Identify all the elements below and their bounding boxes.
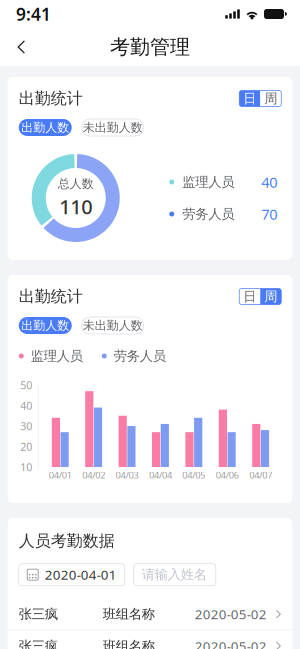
staticText: 劳务人员 bbox=[114, 348, 166, 364]
staticText: 人员考勤数据 bbox=[19, 531, 115, 551]
staticText: 劳务人员 bbox=[182, 206, 234, 222]
staticText: 04/05 bbox=[182, 469, 205, 481]
staticText: 04/02 bbox=[82, 469, 105, 481]
button[interactable]: 未出勤人数 bbox=[82, 119, 144, 136]
button[interactable]: 未出勤人数 bbox=[82, 317, 144, 334]
staticText: 班组名称 bbox=[103, 638, 155, 649]
button[interactable]: 张三疯 bbox=[8, 630, 292, 649]
staticText: 2020-05-02 bbox=[195, 605, 267, 623]
staticText: 04/01 bbox=[49, 469, 72, 481]
staticText: 出勤人数 bbox=[21, 120, 69, 135]
staticText: 监理人员 bbox=[31, 348, 83, 364]
staticText: 04/03 bbox=[115, 469, 138, 481]
staticText: 40 bbox=[20, 398, 32, 413]
staticText: 日 bbox=[243, 90, 256, 107]
staticText: 周 bbox=[264, 288, 277, 305]
staticText: 未出勤人数 bbox=[83, 318, 143, 333]
staticText: 04/07 bbox=[249, 469, 272, 481]
staticText: 周 bbox=[264, 90, 277, 107]
staticText: 04/06 bbox=[216, 469, 239, 481]
button[interactable]: 出勤人数 bbox=[19, 119, 72, 136]
button[interactable]: 请输入姓名 bbox=[134, 564, 216, 586]
button[interactable]: 周 bbox=[260, 288, 281, 304]
staticText: 张三疯 bbox=[19, 638, 58, 649]
button[interactable]: Back bbox=[7, 29, 36, 65]
staticText: 出勤统计 bbox=[19, 287, 83, 306]
staticText: 30 bbox=[20, 419, 32, 433]
staticText: 出勤统计 bbox=[19, 89, 83, 108]
staticText: 监理人员 bbox=[182, 174, 234, 190]
staticText: 日 bbox=[243, 288, 256, 305]
staticText: 110 bbox=[59, 193, 92, 220]
staticText: 04/04 bbox=[149, 469, 172, 481]
button[interactable]: 2020-04-01 bbox=[19, 564, 125, 586]
staticText: 20 bbox=[20, 439, 32, 454]
button[interactable]: 出勤人数 bbox=[19, 317, 72, 334]
button[interactable]: 张三疯 bbox=[8, 599, 292, 630]
staticText: 70 bbox=[261, 204, 277, 224]
staticText: 张三疯 bbox=[19, 606, 58, 622]
staticText: 总人数 bbox=[58, 176, 94, 191]
staticText: 2020-05-02 bbox=[195, 637, 267, 649]
button[interactable]: 日 bbox=[239, 288, 260, 304]
button[interactable]: 日 bbox=[239, 90, 260, 106]
staticText: 出勤人数 bbox=[21, 318, 69, 333]
staticText: 班组名称 bbox=[103, 606, 155, 622]
staticText: 2020-04-01 bbox=[45, 566, 117, 583]
staticText: 请输入姓名 bbox=[142, 566, 207, 583]
staticText: 考勤管理 bbox=[110, 35, 190, 59]
staticText: 未出勤人数 bbox=[83, 120, 143, 135]
button[interactable]: 周 bbox=[260, 90, 281, 106]
staticText: 9:41 bbox=[16, 2, 51, 25]
staticText: 50 bbox=[20, 378, 32, 392]
staticText: 10 bbox=[20, 460, 32, 474]
staticText: 40 bbox=[261, 172, 277, 192]
